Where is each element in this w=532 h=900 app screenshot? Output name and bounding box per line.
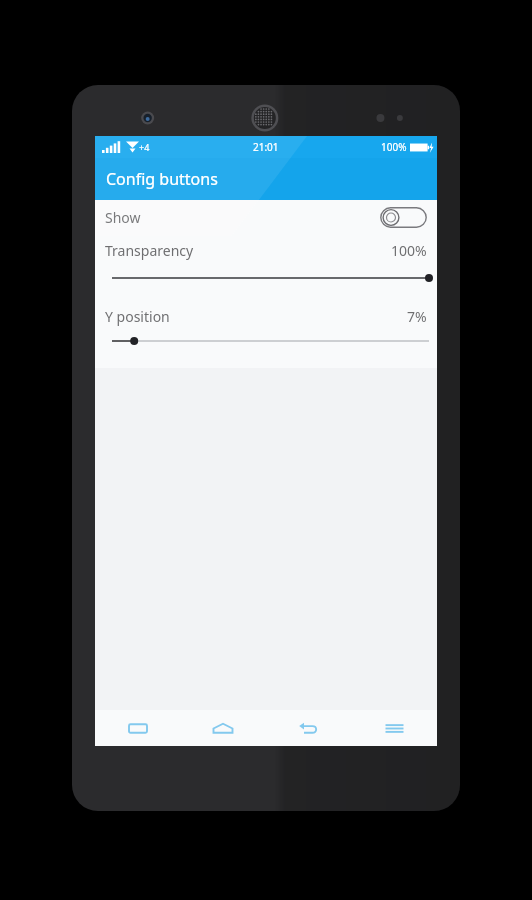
button[interactable]: Menu xyxy=(351,710,437,746)
button[interactable]: Show toggle xyxy=(380,207,427,228)
staticText: +4 xyxy=(139,141,150,153)
staticText: 7% xyxy=(407,307,427,326)
button[interactable]: Back xyxy=(265,710,351,746)
button[interactable]: Slider xyxy=(95,267,437,289)
staticText: Config buttons xyxy=(106,168,218,190)
button[interactable]: Home xyxy=(180,710,265,746)
button[interactable]: Recents xyxy=(95,710,180,746)
staticText: Transparency xyxy=(105,241,194,260)
staticText: 100% xyxy=(391,241,427,260)
staticText: 21:01 xyxy=(253,140,279,154)
button[interactable]: Show xyxy=(95,200,437,234)
button[interactable]: Slider xyxy=(95,330,437,352)
staticText: Y position xyxy=(105,307,170,326)
staticText: 100% xyxy=(381,140,407,154)
staticText: Show xyxy=(105,208,141,227)
